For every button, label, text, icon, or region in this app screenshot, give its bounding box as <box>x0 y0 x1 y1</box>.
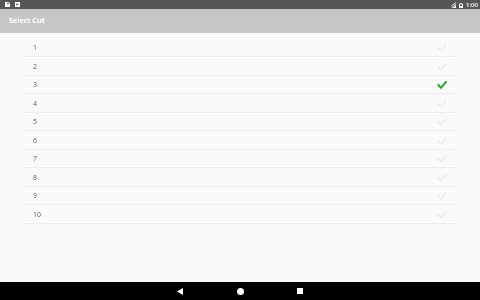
staticText: 10 <box>33 210 42 220</box>
staticText: 1:00 <box>466 1 478 9</box>
button[interactable]: 7 <box>0 149 480 168</box>
button[interactable]: 8 <box>0 168 480 187</box>
staticText: 1 <box>33 43 38 53</box>
button[interactable]: 9 <box>0 186 480 205</box>
staticText: 5 <box>33 117 38 127</box>
button[interactable]: Recent apps <box>280 282 320 300</box>
button[interactable]: 6 <box>0 131 480 150</box>
button[interactable]: 5 <box>0 112 480 131</box>
staticText: 7 <box>33 154 38 164</box>
staticText: 8 <box>33 173 38 183</box>
button[interactable]: 3 <box>0 75 480 94</box>
button[interactable]: Home <box>220 282 260 300</box>
button[interactable]: 1 <box>0 38 480 57</box>
staticText: 9 <box>33 191 38 201</box>
staticText: 2 <box>33 62 38 72</box>
staticText: 6 <box>33 136 38 146</box>
button[interactable]: 4 <box>0 94 480 113</box>
button[interactable]: Back <box>160 282 200 300</box>
staticText: Select Cut <box>9 15 45 25</box>
staticText: 4 <box>33 99 38 109</box>
staticText: 3 <box>33 80 38 90</box>
button[interactable]: 10 <box>0 205 480 224</box>
button[interactable]: 2 <box>0 57 480 76</box>
